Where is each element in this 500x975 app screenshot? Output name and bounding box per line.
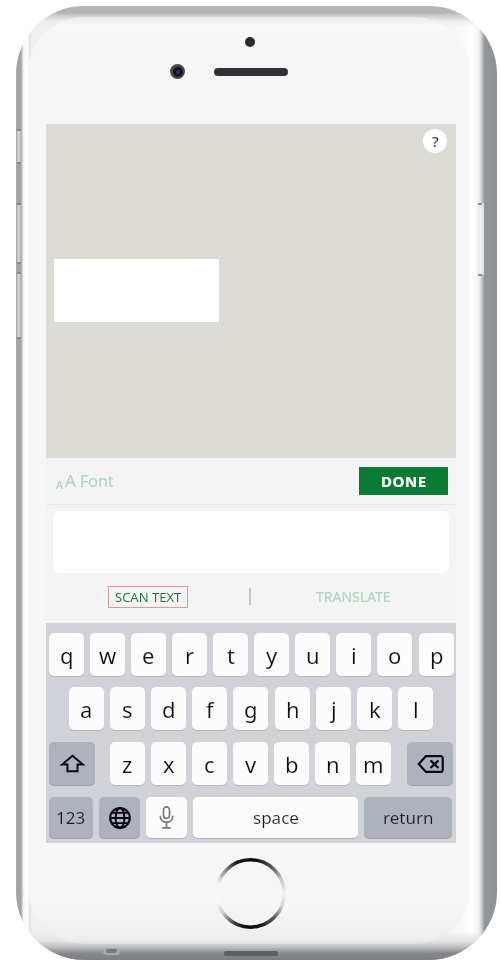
button[interactable]: A (56, 469, 114, 492)
staticText: return (383, 806, 434, 829)
button[interactable]: c (192, 742, 227, 785)
staticText: y (266, 640, 278, 670)
staticText: z (122, 749, 133, 779)
button[interactable]: Backspace (407, 742, 453, 785)
staticText: m (363, 749, 384, 779)
staticText: h (286, 694, 300, 724)
staticText: DONE (381, 471, 427, 491)
button[interactable]: Numbers (49, 797, 93, 838)
staticText: TRANSLATE (316, 587, 391, 606)
button[interactable]: t (213, 633, 248, 676)
staticText: n (326, 749, 340, 779)
button[interactable]: b (274, 742, 309, 785)
button[interactable]: TRANSLATE (316, 587, 391, 606)
button[interactable]: i (336, 633, 371, 676)
button[interactable]: Home (215, 858, 286, 929)
button[interactable]: Change keyboard (99, 797, 140, 838)
button[interactable]: o (377, 633, 412, 676)
staticText: e (142, 640, 155, 670)
button[interactable]: m (356, 742, 391, 785)
button[interactable]: Help (423, 129, 447, 153)
button[interactable]: e (131, 633, 166, 676)
staticText: SCAN TEXT (115, 588, 182, 606)
staticText: t (227, 640, 235, 670)
staticText: l (413, 694, 419, 724)
button[interactable]: j (316, 687, 351, 730)
button[interactable]: d (151, 687, 186, 730)
staticText: b (285, 749, 299, 779)
button[interactable]: Dictate (146, 797, 187, 838)
button[interactable]: v (233, 742, 268, 785)
staticText: g (244, 694, 258, 724)
staticText: q (60, 640, 74, 670)
button[interactable]: Shift (49, 742, 95, 785)
staticText: o (388, 640, 402, 670)
button[interactable]: f (192, 687, 227, 730)
button[interactable]: w (90, 633, 125, 676)
staticText: k (369, 694, 381, 724)
staticText: space (253, 806, 299, 829)
staticText: v (245, 749, 257, 779)
staticText: A (65, 469, 76, 492)
button[interactable]: a (69, 687, 104, 730)
staticText: u (306, 640, 320, 670)
staticText: j (331, 694, 337, 724)
staticText: 123 (56, 806, 86, 829)
button[interactable]: return (364, 797, 452, 838)
staticText: x (163, 749, 175, 779)
staticText: w (99, 640, 117, 670)
staticText: r (185, 640, 195, 670)
staticText: A (56, 477, 64, 492)
button[interactable]: r (172, 633, 207, 676)
button[interactable]: DONE (359, 467, 448, 495)
staticText: c (204, 749, 215, 779)
staticText: i (351, 640, 357, 670)
staticText: ? (432, 131, 439, 151)
button[interactable]: g (233, 687, 268, 730)
button[interactable]: x (151, 742, 186, 785)
staticText: f (206, 694, 214, 724)
button[interactable]: SCAN TEXT (108, 586, 188, 608)
button[interactable]: h (275, 687, 310, 730)
staticText: Font (80, 470, 114, 492)
button[interactable]: u (295, 633, 330, 676)
button[interactable]: space (193, 797, 358, 838)
button[interactable]: y (254, 633, 289, 676)
staticText: s (122, 694, 133, 724)
button[interactable]: l (398, 687, 433, 730)
button[interactable]: p (419, 633, 454, 676)
button[interactable]: n (315, 742, 350, 785)
button[interactable]: z (110, 742, 145, 785)
staticText: a (80, 694, 93, 724)
button[interactable]: s (110, 687, 145, 730)
button[interactable]: k (357, 687, 392, 730)
button[interactable]: q (49, 633, 84, 676)
staticText: d (162, 694, 176, 724)
staticText: p (430, 640, 444, 670)
